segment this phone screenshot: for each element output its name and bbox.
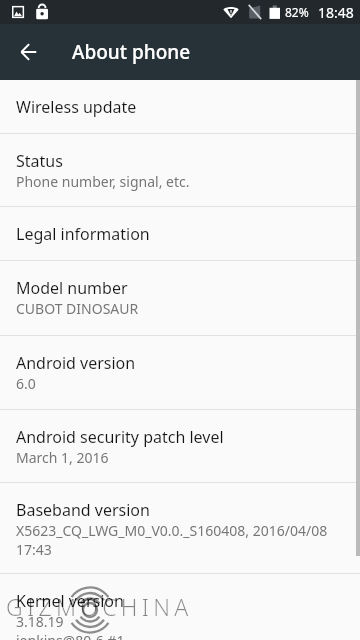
staticText: X5623_CQ_LWG_M0_V0.0._S160408, 2016/04/0… xyxy=(16,521,328,559)
staticText: 3.18.19 jenkins@80-6 #1 xyxy=(16,612,125,640)
button[interactable]: Status xyxy=(0,134,360,206)
staticText: Baseband version xyxy=(16,499,150,521)
staticText: Legal information xyxy=(16,223,150,245)
button[interactable]: Legal information xyxy=(0,207,360,260)
button[interactable]: Android version xyxy=(0,336,360,409)
button[interactable]: Wireless update xyxy=(0,80,360,133)
staticText: 82% xyxy=(285,4,309,20)
staticText: Kernel version xyxy=(16,590,124,612)
staticText: 6.0 xyxy=(16,374,36,393)
staticText: CUBOT DINOSAUR xyxy=(16,299,139,318)
staticText: Wireless update xyxy=(16,96,137,118)
staticText: GIZMOCHINA xyxy=(6,591,193,622)
button[interactable]: Kernel version xyxy=(0,574,360,640)
staticText: Android version xyxy=(16,352,136,374)
staticText: Phone number, signal, etc. xyxy=(16,172,190,191)
staticText: Model number xyxy=(16,277,128,299)
button[interactable]: Baseband version xyxy=(0,483,360,573)
button[interactable]: Model number xyxy=(0,261,360,335)
staticText: 18:48 xyxy=(318,3,354,22)
staticText: Status xyxy=(16,150,63,172)
button[interactable]: Android security patch level xyxy=(0,410,360,482)
staticText: About phone xyxy=(72,39,191,65)
staticText: March 1, 2016 xyxy=(16,448,109,467)
staticText: Android security patch level xyxy=(16,426,224,448)
button[interactable]: Navigate up xyxy=(8,32,48,72)
